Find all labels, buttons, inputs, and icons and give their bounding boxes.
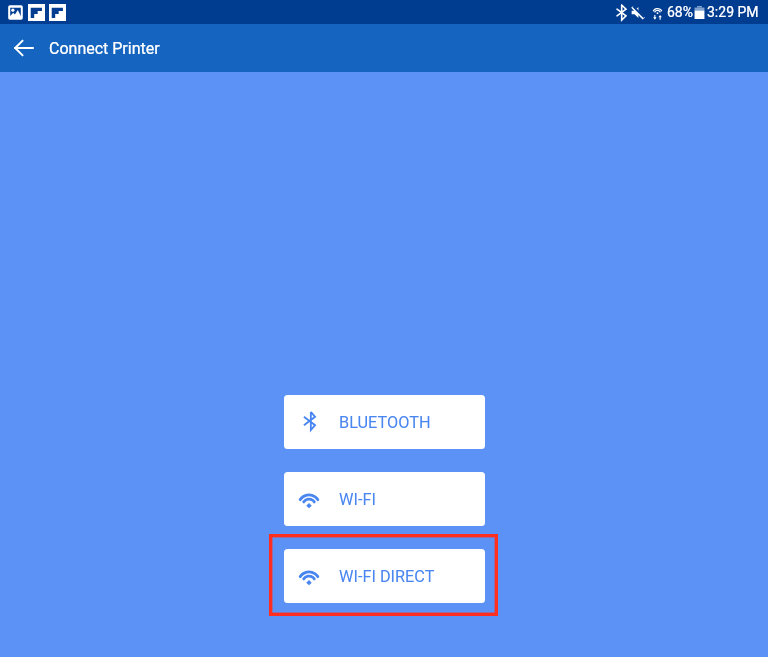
staticText: WI-FI [339, 490, 376, 509]
staticText: 68% [667, 4, 693, 20]
button[interactable]: Back [0, 24, 48, 72]
staticText: 3:29 PM [707, 4, 759, 20]
button[interactable]: WI-FI DIRECT [284, 549, 485, 603]
button[interactable]: WI-FI [284, 472, 485, 526]
staticText: WI-FI DIRECT [339, 567, 435, 586]
button[interactable]: BLUETOOTH [284, 395, 485, 449]
staticText: BLUETOOTH [339, 413, 431, 432]
staticText: Connect Printer [49, 39, 160, 58]
